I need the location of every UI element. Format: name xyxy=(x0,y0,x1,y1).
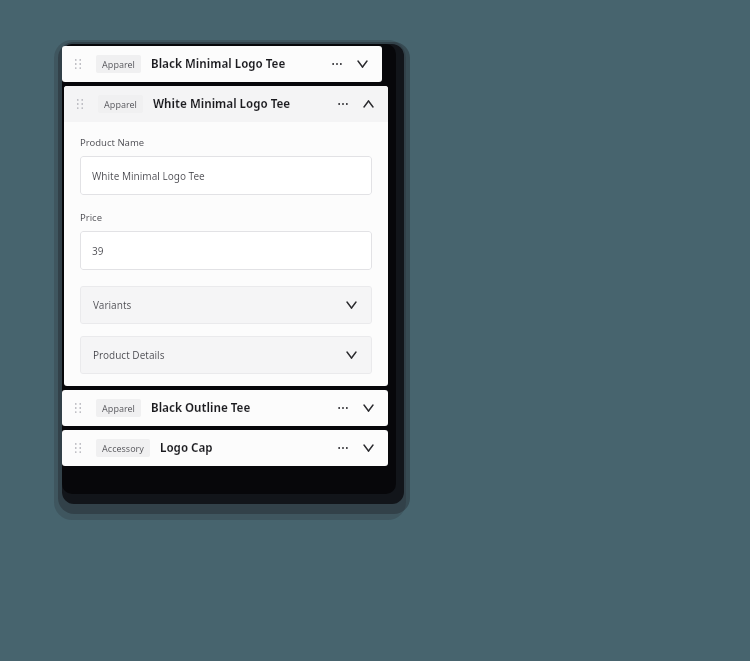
button[interactable]: Variants xyxy=(80,286,372,324)
button[interactable]: More options xyxy=(336,401,350,415)
button[interactable]: More options xyxy=(336,441,350,455)
staticText: Apparel xyxy=(102,58,135,70)
staticText: Black Minimal Logo Tee xyxy=(151,56,286,72)
other: Reorder xyxy=(74,58,82,70)
button[interactable]: Reorder xyxy=(62,46,382,82)
button[interactable]: Expand xyxy=(343,347,359,363)
staticText: Product Details xyxy=(93,348,165,362)
button[interactable]: Expand xyxy=(360,400,376,416)
button[interactable]: Product Details xyxy=(80,336,372,374)
staticText: White Minimal Logo Tee xyxy=(92,169,205,183)
staticText: Apparel xyxy=(104,98,137,110)
staticText: Logo Cap xyxy=(160,440,213,456)
button[interactable]: Reorder xyxy=(64,86,388,122)
button[interactable]: Expand xyxy=(343,297,359,313)
other: Reorder xyxy=(74,442,82,454)
other: Reorder xyxy=(76,98,84,110)
other: Reorder xyxy=(74,402,82,414)
staticText: Variants xyxy=(93,298,132,312)
button[interactable]: Collapse xyxy=(360,96,376,112)
button[interactable]: 39 xyxy=(80,231,372,270)
button[interactable]: Reorder xyxy=(62,430,388,466)
staticText: 39 xyxy=(92,244,104,258)
button[interactable]: More options xyxy=(330,57,344,71)
button[interactable]: Reorder xyxy=(62,390,388,426)
staticText: Accessory xyxy=(102,442,144,454)
button[interactable]: More options xyxy=(336,97,350,111)
staticText: White Minimal Logo Tee xyxy=(153,96,291,112)
button[interactable]: White Minimal Logo Tee xyxy=(80,156,372,195)
staticText: Apparel xyxy=(102,402,135,414)
button[interactable]: Expand xyxy=(360,440,376,456)
staticText: Black Outline Tee xyxy=(151,400,251,416)
staticText: Price xyxy=(80,211,103,224)
button[interactable]: Expand xyxy=(354,56,370,72)
staticText: Product Name xyxy=(80,136,145,149)
